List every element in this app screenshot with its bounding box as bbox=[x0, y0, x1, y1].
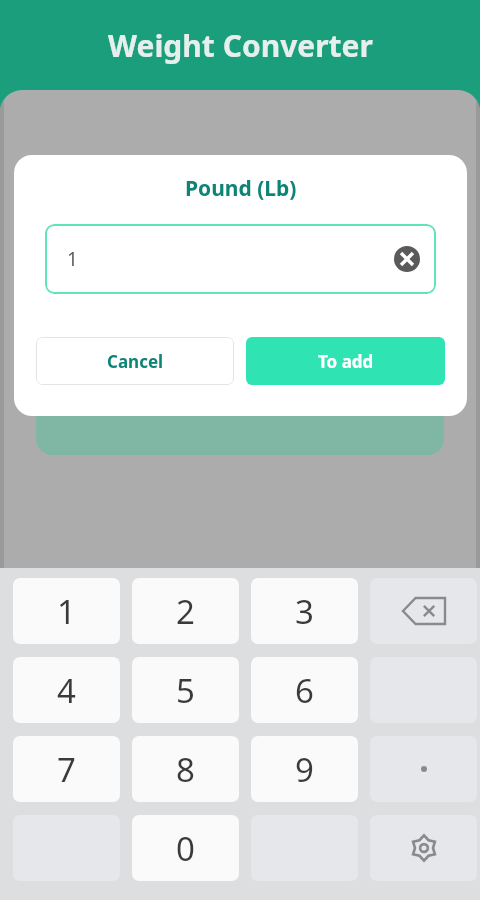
staticText: 6 bbox=[295, 668, 314, 713]
staticText: To add bbox=[318, 350, 374, 373]
staticText: Cancel bbox=[107, 350, 164, 373]
staticText: 4 bbox=[57, 668, 76, 713]
staticText: Pound (Lb) bbox=[185, 174, 297, 203]
button[interactable]: 6 bbox=[251, 657, 358, 723]
staticText: 3 bbox=[295, 589, 314, 634]
button[interactable]: To add bbox=[246, 337, 445, 385]
button[interactable]: Cancel bbox=[36, 337, 234, 385]
button[interactable]: Backspace bbox=[370, 578, 477, 644]
button[interactable]: 5 bbox=[132, 657, 239, 723]
button[interactable]: Settings bbox=[370, 815, 477, 881]
button[interactable]: 7 bbox=[13, 736, 120, 802]
button[interactable]: Clear text bbox=[394, 246, 420, 272]
staticText: 5 bbox=[176, 668, 195, 713]
staticText: 1 bbox=[57, 589, 76, 634]
staticText: Weight Converter bbox=[108, 25, 373, 66]
staticText: 7 bbox=[57, 747, 76, 792]
button[interactable]: Decimal point bbox=[370, 736, 477, 802]
staticText: 1 bbox=[67, 246, 78, 272]
button[interactable]: 1 bbox=[13, 578, 120, 644]
staticText: 0 bbox=[176, 826, 195, 871]
button[interactable]: 9 bbox=[251, 736, 358, 802]
staticText: 9 bbox=[295, 747, 314, 792]
staticText: 8 bbox=[176, 747, 195, 792]
staticText: 2 bbox=[176, 589, 195, 634]
button[interactable]: 0 bbox=[132, 815, 239, 881]
button[interactable]: 3 bbox=[251, 578, 358, 644]
button[interactable]: 4 bbox=[13, 657, 120, 723]
button[interactable]: 8 bbox=[132, 736, 239, 802]
button[interactable]: 2 bbox=[132, 578, 239, 644]
button[interactable]: 1 bbox=[45, 224, 436, 294]
